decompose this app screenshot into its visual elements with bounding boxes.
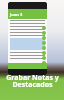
button[interactable]: Action <box>42 26 46 30</box>
button[interactable]: Action <box>42 46 46 50</box>
button[interactable]: Action <box>42 61 46 65</box>
button[interactable]: Action <box>42 56 46 60</box>
button[interactable]: Action <box>42 51 46 55</box>
button[interactable]: Action <box>42 31 46 35</box>
button[interactable]: Action <box>42 36 46 40</box>
button[interactable]: Action <box>42 41 46 45</box>
staticText: Grabar Notas y Destacados <box>6 73 59 90</box>
staticText: Juan 3 <box>10 12 23 17</box>
